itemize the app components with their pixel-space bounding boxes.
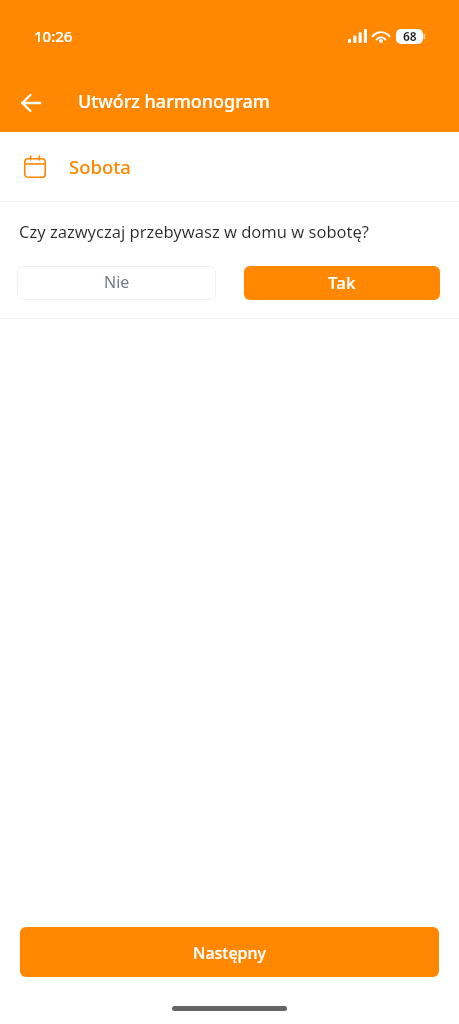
staticText: 10:26 [34, 26, 73, 46]
staticText: Tak [328, 271, 356, 294]
staticText: Sobota [69, 154, 131, 179]
button[interactable]: Tak [244, 266, 440, 300]
button[interactable]: Calendar [0, 132, 459, 201]
button[interactable]: Nie [17, 266, 216, 300]
staticText: 68 [403, 28, 417, 44]
staticText: Następny [193, 942, 267, 964]
other: Calendar [24, 156, 46, 178]
button[interactable]: Back [8, 80, 54, 126]
staticText: Nie [104, 271, 130, 293]
button[interactable]: Następny [20, 927, 439, 977]
staticText: Utwórz harmonogram [78, 89, 270, 114]
staticText: Czy zazwyczaj przebywasz w domu w sobotę… [19, 220, 369, 242]
